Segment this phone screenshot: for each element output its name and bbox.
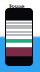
staticText: Issue Details bbox=[9, 2, 31, 18]
